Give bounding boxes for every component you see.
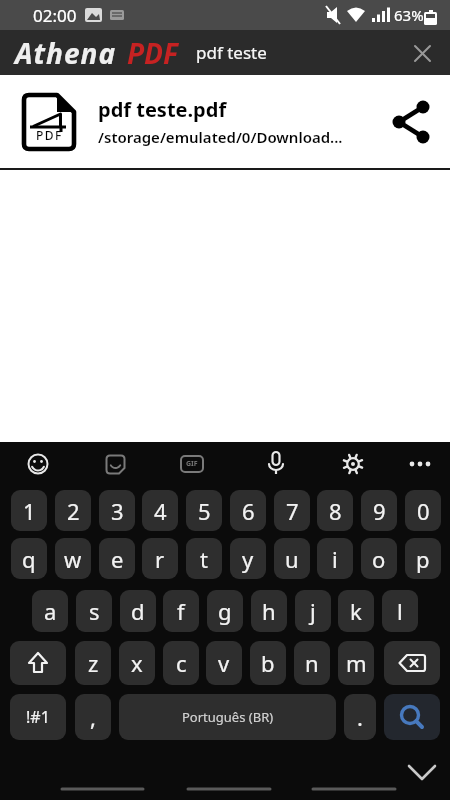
staticText: 0 [417,496,430,526]
staticText: c [176,648,187,678]
button[interactable] [335,446,371,482]
staticText: x [131,648,143,678]
button[interactable] [402,758,442,786]
staticText: t [200,544,208,574]
button[interactable]: h [251,590,287,632]
button[interactable]: l [382,590,418,632]
button[interactable]: x [119,641,155,685]
button[interactable]: u [274,538,310,579]
staticText: a [44,596,57,626]
staticText: 5 [198,496,211,526]
staticText: 1 [23,496,36,526]
staticText: r [155,544,165,574]
staticText: Athena [15,34,117,72]
button[interactable]: a [32,590,68,632]
button[interactable]: z [75,641,111,685]
button[interactable]: k [338,590,374,632]
button[interactable]: j [295,590,331,632]
staticText: 2 [67,496,80,526]
button[interactable]: 5 [186,490,222,531]
button[interactable]: o [361,538,397,579]
button[interactable]: b [250,641,286,685]
staticText: , [90,702,96,732]
button[interactable]: y [230,538,266,579]
staticText: GIF [186,459,198,469]
staticText: p [416,544,430,574]
staticText: w [64,544,82,574]
staticText: 9 [373,496,386,526]
staticText: j [310,596,316,626]
staticText: h [262,596,276,626]
button[interactable]: g [207,590,243,632]
button[interactable]: p [405,538,441,579]
button[interactable] [97,446,133,482]
button[interactable]: 3 [99,490,135,531]
staticText: pdf teste.pdf [98,96,227,123]
button[interactable]: , [75,694,111,740]
button[interactable]: s [76,590,112,632]
staticText: f [177,596,185,626]
button[interactable]: Português (BR) [119,694,336,740]
button[interactable]: d [120,590,156,632]
button[interactable] [10,641,66,685]
button[interactable]: i [317,538,353,579]
button[interactable]: 6 [230,490,266,531]
button[interactable]: 7 [274,490,310,531]
button[interactable]: 9 [361,490,397,531]
staticText: 4 [154,496,167,526]
staticText: y [242,544,254,574]
staticText: 7 [286,496,299,526]
button[interactable]: !#1 [10,694,66,740]
button[interactable]: t [186,538,222,579]
staticText: s [89,596,100,626]
button[interactable]: q [11,538,47,579]
button[interactable]: 2 [55,490,91,531]
button[interactable]: r [142,538,178,579]
staticText: 3 [111,496,124,526]
button[interactable] [258,446,294,482]
staticText: /storage/emulated/0/Download... [98,127,343,147]
staticText: 6 [242,496,255,526]
button[interactable] [409,40,435,66]
staticText: o [372,544,386,574]
staticText: g [218,596,232,626]
button[interactable] [402,446,438,482]
staticText: 02:00 [33,4,77,27]
button[interactable]: f [163,590,199,632]
button[interactable]: c [163,641,199,685]
button[interactable]: v [206,641,242,685]
button[interactable] [384,641,440,685]
button[interactable]: n [294,641,330,685]
button[interactable]: . [344,694,376,740]
button[interactable]: e [99,538,135,579]
button[interactable]: PDF [0,75,450,168]
staticText: 63% [394,5,424,25]
staticText: u [285,544,299,574]
staticText: PDF [127,34,178,72]
button[interactable]: 8 [317,490,353,531]
button[interactable] [20,446,56,482]
staticText: . [357,702,363,732]
button[interactable]: 4 [142,490,178,531]
staticText: q [22,544,36,574]
staticText: z [88,648,99,678]
staticText: d [131,596,145,626]
staticText: e [111,544,124,574]
staticText: v [218,648,230,678]
staticText: k [350,596,362,626]
staticText: i [332,544,338,574]
button[interactable]: w [55,538,91,579]
staticText: Português (BR) [182,708,274,726]
staticText: 8 [329,496,342,526]
staticText: b [261,648,275,678]
staticText: n [305,648,319,678]
button[interactable]: 0 [405,490,441,531]
staticText: pdf teste [196,41,267,64]
button[interactable]: GIF [174,446,210,482]
button[interactable]: m [338,641,374,685]
button[interactable] [384,694,440,740]
staticText: PDF [36,127,63,143]
button[interactable] [384,94,440,150]
button[interactable]: 1 [11,490,47,531]
staticText: l [397,596,403,626]
